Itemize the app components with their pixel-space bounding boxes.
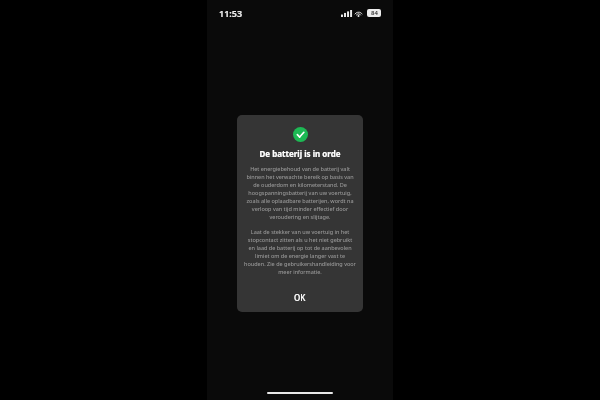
button[interactable]: OK <box>244 286 356 308</box>
staticText: Het energiebehoud van de batterij valt b… <box>244 165 356 221</box>
staticText: 84 <box>371 9 378 17</box>
staticText: Laat de stekker van uw voertuig in het s… <box>244 228 356 276</box>
staticText: OK <box>294 292 306 303</box>
staticText: 11:53 <box>219 7 243 19</box>
staticText: De batterij is in orde <box>259 148 341 159</box>
other: Battery healthy <box>293 127 308 142</box>
